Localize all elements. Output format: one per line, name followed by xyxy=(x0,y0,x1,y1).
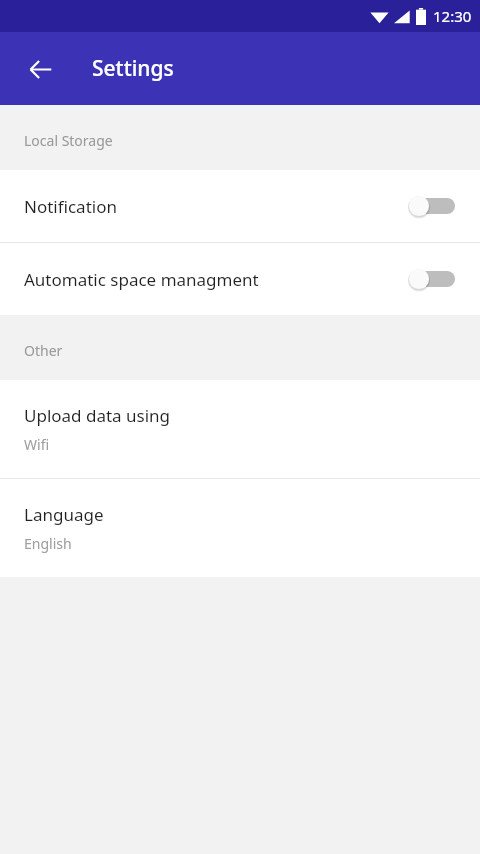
staticText: 12:30 xyxy=(433,6,472,26)
staticText: Wifi xyxy=(24,435,50,454)
staticText: English xyxy=(24,534,72,553)
button[interactable]: Notification xyxy=(0,170,480,242)
staticText: Local Storage xyxy=(24,131,113,150)
staticText: Language xyxy=(24,503,104,526)
staticText: Automatic space managment xyxy=(24,268,407,291)
staticText: Notification xyxy=(24,195,407,218)
button[interactable]: Upload data using xyxy=(0,380,480,478)
button[interactable]: Back xyxy=(14,43,66,95)
button[interactable]: Toggle xyxy=(407,193,455,219)
staticText: Other xyxy=(24,341,63,360)
staticText: Upload data using xyxy=(24,404,171,427)
button[interactable]: Toggle xyxy=(407,266,455,292)
button[interactable]: Automatic space managment xyxy=(0,243,480,315)
button[interactable]: Language xyxy=(0,479,480,577)
staticText: Settings xyxy=(92,54,174,83)
